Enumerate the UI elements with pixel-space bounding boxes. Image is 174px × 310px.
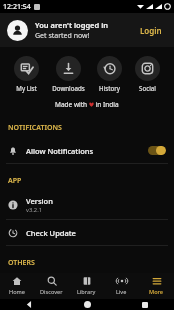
button[interactable]: Live bbox=[104, 273, 139, 299]
button[interactable]: My List bbox=[12, 55, 41, 93]
button[interactable]: You aren't logged in bbox=[0, 13, 174, 47]
staticText: in India bbox=[94, 100, 119, 109]
staticText: My List bbox=[16, 84, 37, 92]
button[interactable]: Library bbox=[69, 273, 104, 299]
staticText: Check Update bbox=[26, 228, 76, 238]
staticText: OTHERS bbox=[8, 258, 35, 268]
button[interactable]: More bbox=[139, 273, 174, 299]
staticText: Downloads bbox=[52, 84, 85, 92]
button[interactable]: Allow Notifications bbox=[0, 138, 174, 163]
staticText: Get started now! bbox=[35, 31, 90, 41]
button[interactable]: Discover bbox=[34, 273, 69, 299]
button[interactable]: Downloads bbox=[50, 55, 87, 93]
button[interactable]: Home bbox=[58, 299, 116, 310]
staticText: Library bbox=[77, 288, 96, 296]
staticText: NOTIFICATIONS bbox=[8, 123, 62, 133]
staticText: Allow Notifications bbox=[26, 146, 148, 156]
staticText: APP bbox=[8, 176, 22, 186]
button[interactable]: Recents bbox=[116, 299, 174, 310]
button[interactable]: Home bbox=[0, 273, 34, 299]
staticText: More bbox=[149, 288, 164, 296]
staticText: Social bbox=[139, 84, 156, 92]
button[interactable] bbox=[148, 146, 166, 155]
staticText: v3.2.1 bbox=[26, 206, 42, 214]
button[interactable]: Login bbox=[135, 22, 167, 39]
button[interactable]: History bbox=[95, 55, 124, 93]
staticText: 12:21:54 bbox=[3, 2, 31, 12]
staticText: You aren't logged in bbox=[35, 20, 109, 30]
staticText: Made with bbox=[55, 100, 89, 109]
staticText: Discover bbox=[40, 288, 63, 296]
button[interactable]: Social bbox=[133, 55, 162, 93]
staticText: Live bbox=[116, 288, 127, 296]
button[interactable]: Check Update bbox=[0, 220, 174, 245]
staticText: Login bbox=[140, 25, 162, 36]
button[interactable]: Back bbox=[0, 299, 58, 310]
staticText: Version bbox=[26, 196, 53, 206]
staticText: Home bbox=[9, 288, 25, 296]
button[interactable]: Version bbox=[0, 191, 174, 219]
staticText: History bbox=[99, 84, 120, 92]
